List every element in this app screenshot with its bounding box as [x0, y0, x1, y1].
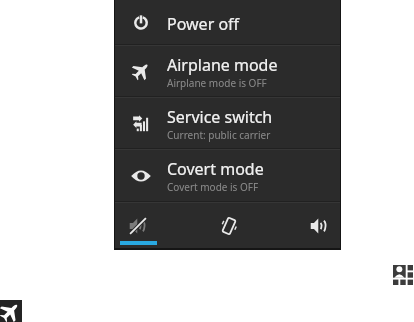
button[interactable]: Covert mode: [115, 150, 340, 201]
button[interactable]: Vibrate: [199, 203, 259, 248]
staticText: Service switch: [167, 106, 273, 128]
button[interactable]: Airplane mode: [115, 46, 340, 96]
button[interactable]: Silent mode: [108, 203, 168, 248]
button[interactable]: Airplane mode: [0, 300, 22, 322]
button[interactable]: Sound on: [289, 203, 349, 248]
staticText: Covert mode is OFF: [167, 180, 259, 194]
staticText: Covert mode: [167, 158, 264, 180]
staticText: Airplane mode is OFF: [167, 76, 267, 90]
button[interactable]: Power off: [115, 0, 340, 44]
staticText: Airplane mode: [167, 54, 278, 76]
staticText: Current: public carrier: [167, 128, 271, 142]
button[interactable]: Apps: [393, 265, 413, 285]
button[interactable]: Service switch: [115, 98, 340, 148]
staticText: Power off: [167, 13, 240, 35]
